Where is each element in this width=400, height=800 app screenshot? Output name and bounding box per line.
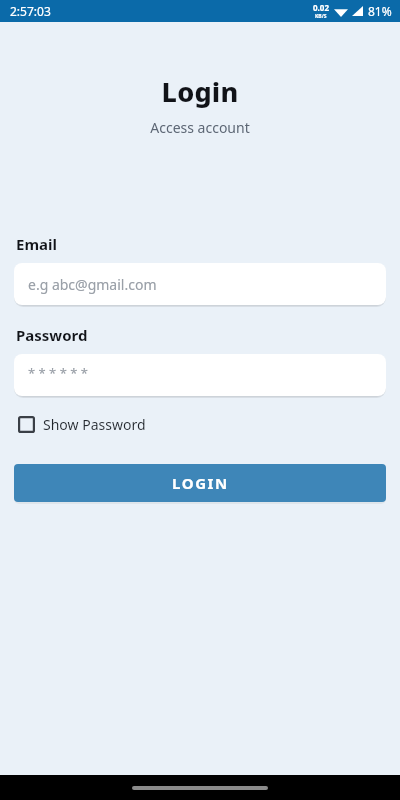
staticText: 0.02 <box>313 2 329 13</box>
other: Wi-Fi <box>334 6 348 17</box>
staticText: KB/S <box>315 13 327 20</box>
staticText: 2:57:03 <box>10 3 51 19</box>
button[interactable]: LOGIN <box>14 464 386 502</box>
staticText: Login <box>0 73 400 110</box>
staticText: Access account <box>0 118 400 137</box>
staticText: LOGIN <box>172 473 229 493</box>
other: Cellular signal <box>352 6 363 16</box>
staticText: Email <box>16 234 57 254</box>
button[interactable]: e.g abc@gmail.com <box>14 263 386 305</box>
staticText: Show Password <box>43 415 146 434</box>
staticText: Password <box>16 325 88 345</box>
button[interactable]: Show Password <box>16 411 148 438</box>
staticText: * * * * * * <box>28 364 88 382</box>
staticText: 81% <box>368 3 392 19</box>
button[interactable]: * * * * * * <box>14 354 386 396</box>
staticText: e.g abc@gmail.com <box>28 275 157 294</box>
